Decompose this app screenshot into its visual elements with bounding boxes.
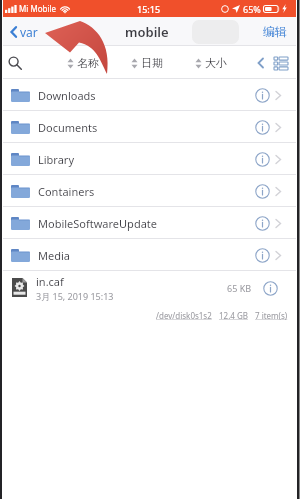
staticText: Containers	[38, 184, 95, 199]
button[interactable]: Previous	[257, 57, 264, 69]
button[interactable]: Documents	[3, 111, 296, 143]
staticText: 7 item(s)	[255, 310, 288, 321]
staticText: Downloads	[38, 88, 96, 103]
button[interactable]: Info	[253, 182, 271, 200]
staticText: 12.4 GB	[219, 310, 248, 321]
button[interactable]: Info	[253, 246, 271, 264]
button[interactable]: Info	[253, 150, 271, 168]
button[interactable]: Containers	[3, 175, 296, 207]
staticText: in.caf	[36, 274, 64, 289]
staticText: 大小	[205, 56, 227, 70]
button[interactable]: Info	[253, 118, 271, 136]
button[interactable]: Search	[5, 53, 25, 73]
staticText: 日期	[141, 56, 163, 70]
button[interactable]: 名称	[65, 52, 101, 74]
staticText: 65%	[243, 3, 261, 15]
button[interactable]: Info	[253, 214, 271, 232]
staticText: /dev/disk0s1s2	[156, 310, 212, 321]
button[interactable]: 编辑	[257, 18, 296, 45]
staticText: var	[20, 24, 38, 40]
staticText: Documents	[38, 120, 98, 135]
button[interactable]: Grid view	[272, 54, 290, 72]
staticText: Library	[38, 152, 75, 167]
staticText: 65 KB	[227, 282, 252, 294]
button[interactable]: Info	[261, 279, 279, 297]
staticText: MobileSoftwareUpdate	[38, 216, 157, 231]
staticText: Media	[38, 248, 70, 263]
button[interactable]: 大小	[193, 52, 229, 74]
button[interactable]: Info	[253, 86, 271, 104]
button[interactable]: var	[3, 18, 44, 46]
button[interactable]: in.caf	[3, 271, 296, 304]
staticText: 15:15	[137, 3, 161, 15]
button[interactable]: Downloads	[3, 79, 296, 111]
button[interactable]: MobileSoftwareUpdate	[3, 207, 296, 239]
button[interactable]: 日期	[129, 52, 165, 74]
staticText: 3月 15, 2019 15:13	[36, 290, 114, 302]
staticText: Mi Mobile	[19, 3, 57, 14]
button[interactable]: Library	[3, 143, 296, 175]
staticText: mobile	[125, 23, 169, 41]
button[interactable]: Media	[3, 239, 296, 271]
staticText: 名称	[77, 56, 99, 70]
